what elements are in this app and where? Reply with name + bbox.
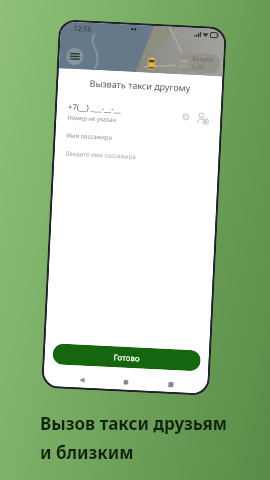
staticText: Введите имя пассажира: [65, 150, 137, 161]
staticText: 12:56: [73, 24, 92, 35]
button[interactable]: Back: [74, 372, 89, 387]
staticText: Номер не указан: [67, 114, 117, 124]
button[interactable]: Menu: [66, 47, 84, 65]
button[interactable]: Готово: [52, 343, 201, 371]
staticText: Вызов такси друзьям: [40, 412, 228, 435]
button[interactable]: Home: [118, 374, 133, 389]
staticText: Имя пассажира: [66, 132, 112, 142]
staticText: +7(__) ___-__-__: [68, 101, 122, 114]
staticText: Вызвать такси другому: [69, 76, 211, 95]
button[interactable]: Recents: [163, 377, 178, 391]
staticText: Готово: [113, 351, 141, 363]
staticText: Бонусы: [192, 55, 214, 64]
button[interactable]: Бонусы: [175, 52, 221, 74]
staticText: и близким: [40, 441, 134, 464]
staticText: 0,00: [192, 63, 204, 71]
button[interactable]: Add contact: [194, 110, 210, 126]
button[interactable]: Clear: [179, 110, 193, 124]
